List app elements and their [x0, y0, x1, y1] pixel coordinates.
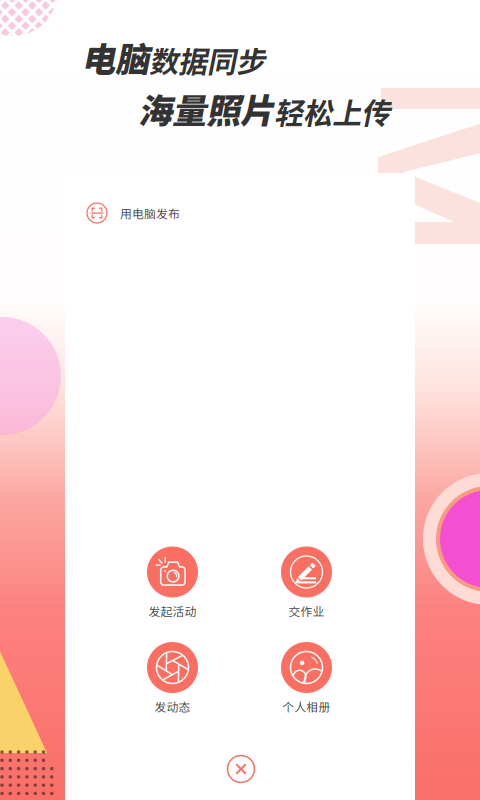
button[interactable]: 交作业: [254, 546, 358, 619]
button[interactable]: Close: [219, 747, 263, 791]
button[interactable]: 发动态: [120, 642, 224, 715]
button[interactable]: 用电脑发布: [86, 202, 180, 224]
staticText: 用电脑发布: [120, 204, 180, 222]
staticText: 交作业: [288, 602, 324, 619]
button[interactable]: 发起活动: [120, 546, 224, 619]
staticText: 发起活动: [148, 602, 196, 619]
staticText: 发动态: [154, 698, 190, 715]
button[interactable]: 个人相册: [254, 642, 358, 715]
staticText: 海量照片轻松上传: [138, 84, 390, 133]
staticText: 电脑数据同步: [81, 33, 265, 81]
staticText: 个人相册: [282, 698, 330, 715]
